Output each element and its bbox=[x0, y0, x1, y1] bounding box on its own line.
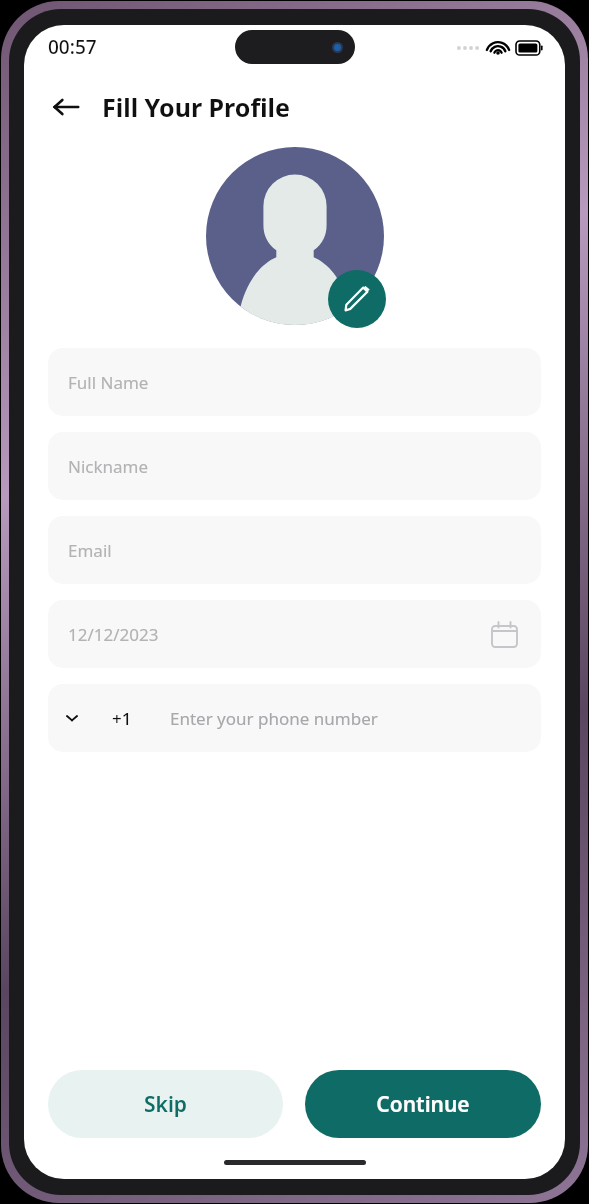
button[interactable]: Edit profile photo bbox=[328, 270, 386, 328]
staticText: +1 bbox=[112, 707, 132, 730]
staticText: Nickname bbox=[68, 455, 149, 478]
staticText: Full Name bbox=[68, 371, 149, 394]
button[interactable]: Nickname bbox=[48, 432, 541, 500]
button[interactable]: Email bbox=[48, 516, 541, 584]
staticText: Continue bbox=[376, 1090, 470, 1119]
staticText: Fill Your Profile bbox=[102, 90, 290, 124]
button[interactable]: Select country code bbox=[48, 684, 541, 752]
button[interactable]: Skip bbox=[48, 1070, 283, 1138]
button[interactable]: Pick date bbox=[487, 617, 521, 651]
staticText: 12/12/2023 bbox=[68, 623, 159, 646]
button[interactable]: Select country code bbox=[58, 704, 86, 732]
button[interactable]: Continue bbox=[305, 1070, 541, 1138]
button[interactable]: Back bbox=[48, 89, 84, 125]
staticText: Skip bbox=[144, 1090, 187, 1119]
staticText: Enter your phone number bbox=[170, 707, 378, 730]
button[interactable]: 12/12/2023 bbox=[48, 600, 541, 668]
staticText: 00:57 bbox=[48, 34, 97, 60]
staticText: Email bbox=[68, 539, 112, 562]
button[interactable]: Full Name bbox=[48, 348, 541, 416]
